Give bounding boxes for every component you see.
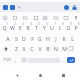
button[interactable]: More — [16, 4, 22, 11]
staticText: U — [50, 24, 54, 31]
staticText: G — [38, 35, 42, 42]
staticText: H — [46, 35, 50, 42]
button[interactable]: P — [72, 22, 80, 32]
staticText: ?123 — [3, 57, 11, 62]
button[interactable]: Backspace — [66, 44, 75, 53]
staticText: 5 — [38, 22, 40, 26]
staticText: O — [66, 24, 71, 31]
staticText: 2 — [14, 22, 16, 26]
staticText: L — [71, 35, 74, 42]
button[interactable]: M — [60, 43, 68, 53]
button[interactable]: Settings — [41, 13, 49, 22]
staticText: W — [10, 24, 15, 31]
button[interactable]: Shift — [1, 44, 10, 53]
button[interactable]: D — [20, 33, 28, 43]
staticText: I — [59, 24, 61, 31]
button[interactable]: C — [28, 43, 36, 53]
button[interactable]: A — [4, 33, 12, 43]
button[interactable]: Y — [40, 22, 48, 32]
button[interactable]: V — [36, 43, 44, 53]
button[interactable]: Back — [12, 70, 22, 80]
button[interactable]: Text editing — [62, 13, 70, 22]
staticText: , — [15, 56, 17, 63]
button[interactable]: S — [12, 33, 20, 43]
staticText: R — [26, 24, 30, 31]
staticText: K — [62, 35, 66, 42]
button[interactable]: Clipboard — [11, 13, 19, 22]
button[interactable]: Gallery — [10, 5, 15, 10]
staticText: P — [74, 24, 78, 31]
staticText: S — [15, 35, 18, 42]
button[interactable]: , — [12, 54, 20, 64]
staticText: T — [35, 24, 38, 31]
staticText: Y — [43, 24, 46, 31]
button[interactable]: Symbols — [1, 55, 12, 64]
staticText: Z — [15, 45, 18, 52]
button[interactable]: Translate — [52, 13, 60, 22]
button[interactable]: Z — [12, 43, 20, 53]
button[interactable]: Home — [35, 70, 45, 80]
button[interactable]: R — [24, 22, 32, 32]
staticText: 4 — [30, 22, 32, 26]
button[interactable]: J — [52, 33, 60, 43]
button[interactable]: O — [64, 22, 72, 32]
button[interactable]: T — [32, 22, 40, 32]
button[interactable]: I — [56, 22, 64, 32]
button[interactable]: H — [44, 33, 52, 43]
button[interactable]: L — [68, 33, 76, 43]
button[interactable]: Camera — [3, 5, 8, 10]
button[interactable]: W — [8, 22, 16, 32]
staticText: 1 — [6, 22, 8, 26]
button[interactable]: Emoji — [64, 5, 69, 10]
staticText: Q — [2, 24, 7, 31]
button[interactable]: G — [36, 33, 44, 43]
staticText: E — [19, 24, 22, 31]
button[interactable]: F — [28, 33, 36, 43]
staticText: J — [55, 35, 57, 42]
staticText: 9 — [70, 22, 72, 26]
staticText: 8 — [62, 22, 64, 26]
button[interactable]: Emoji — [20, 55, 28, 64]
staticText: . — [63, 56, 65, 63]
staticText: C — [30, 45, 34, 52]
button[interactable]: X — [20, 43, 28, 53]
staticText: X — [22, 45, 26, 52]
button[interactable]: Voice input — [72, 13, 80, 22]
staticText: 3 — [22, 22, 24, 26]
staticText: V — [38, 45, 42, 52]
staticText: A — [6, 35, 10, 42]
button[interactable]: E — [16, 22, 24, 32]
staticText: 7 — [54, 22, 56, 26]
staticText: N — [54, 45, 58, 52]
button[interactable]: Stickers — [32, 13, 40, 22]
button[interactable]: Recents — [58, 70, 68, 80]
staticText: D — [22, 35, 26, 42]
button[interactable]: Thumbs up — [71, 4, 77, 11]
button[interactable]: Q — [0, 22, 8, 32]
button[interactable]: GIF — [21, 13, 29, 22]
staticText: 6 — [46, 22, 48, 26]
button[interactable]: Gboard settings — [1, 13, 9, 22]
staticText: 0 — [78, 22, 80, 26]
button[interactable]: N — [52, 43, 60, 53]
button[interactable]: . — [60, 54, 68, 64]
staticText: B — [46, 45, 50, 52]
button[interactable]: K — [60, 33, 68, 43]
staticText: F — [31, 35, 34, 42]
button[interactable]: U — [48, 22, 56, 32]
button[interactable]: B — [44, 43, 52, 53]
staticText: M — [62, 45, 67, 52]
button[interactable]: Enter — [67, 57, 75, 63]
